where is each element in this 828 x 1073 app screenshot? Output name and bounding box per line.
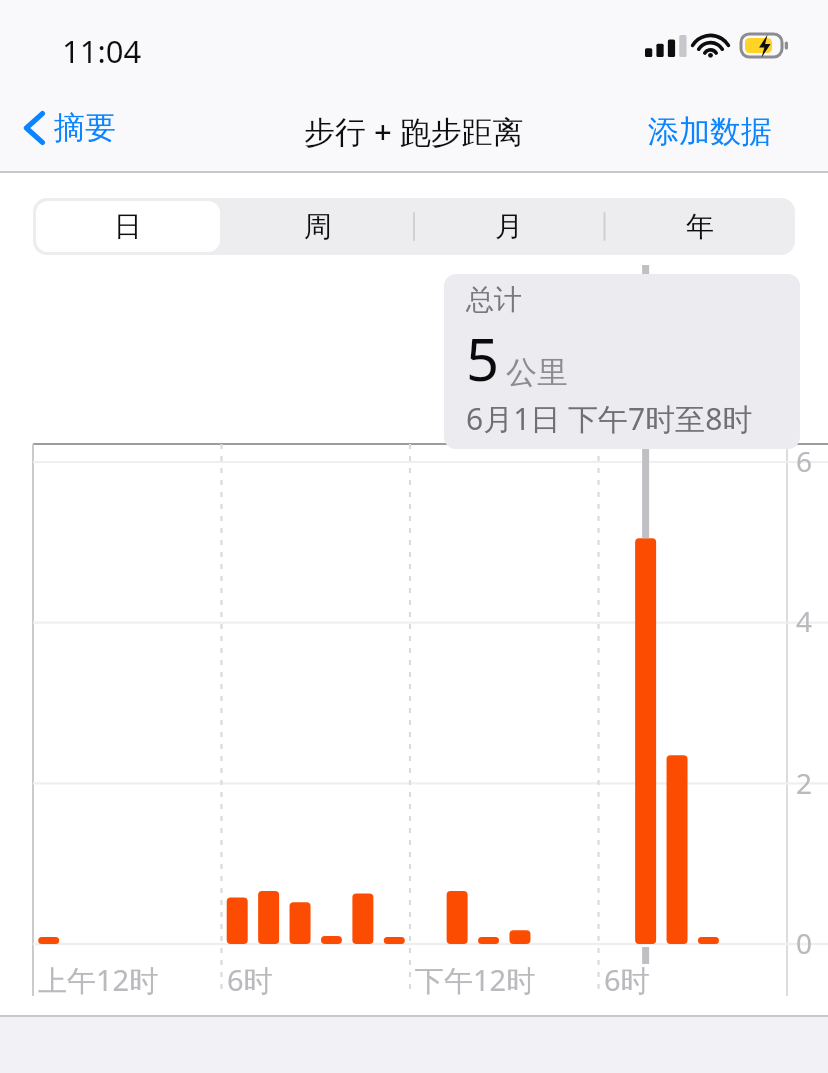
staticText: 总计 (466, 282, 522, 317)
staticText: 11:04 (62, 30, 142, 72)
button[interactable]: Back (14, 98, 128, 157)
staticText: 年 (686, 209, 714, 244)
staticText: 周 (304, 209, 332, 244)
other: Cellular signal (645, 35, 679, 57)
staticText: 2 (796, 764, 813, 802)
button[interactable]: 周 (226, 201, 410, 252)
staticText: 6月1日 下午7时至8时 (466, 398, 753, 439)
button[interactable]: 日 (36, 201, 220, 252)
button[interactable]: 月 (416, 201, 601, 252)
other: Battery charging (740, 33, 790, 58)
staticText: 日 (114, 209, 142, 244)
staticText: 下午12时 (415, 960, 536, 1000)
staticText: 4 (796, 602, 813, 640)
staticText: 公里 (506, 353, 568, 392)
staticText: 摘要 (54, 108, 116, 147)
staticText: 6 (796, 442, 813, 480)
other: Wi-Fi (694, 34, 727, 58)
button[interactable]: 年 (607, 201, 792, 252)
staticText: 步行 + 跑步距离 (304, 110, 524, 152)
staticText: 0 (796, 924, 813, 962)
staticText: 6时 (604, 960, 650, 1000)
staticText: 5 (466, 319, 500, 398)
staticText: 6时 (227, 960, 273, 1000)
other: Back (24, 110, 44, 146)
staticText: 月 (495, 209, 523, 244)
button[interactable]: 总计 (444, 274, 800, 449)
staticText: 添加数据 (648, 112, 772, 151)
button[interactable]: 添加数据 (634, 102, 786, 161)
staticText: 上午12时 (38, 960, 159, 1000)
